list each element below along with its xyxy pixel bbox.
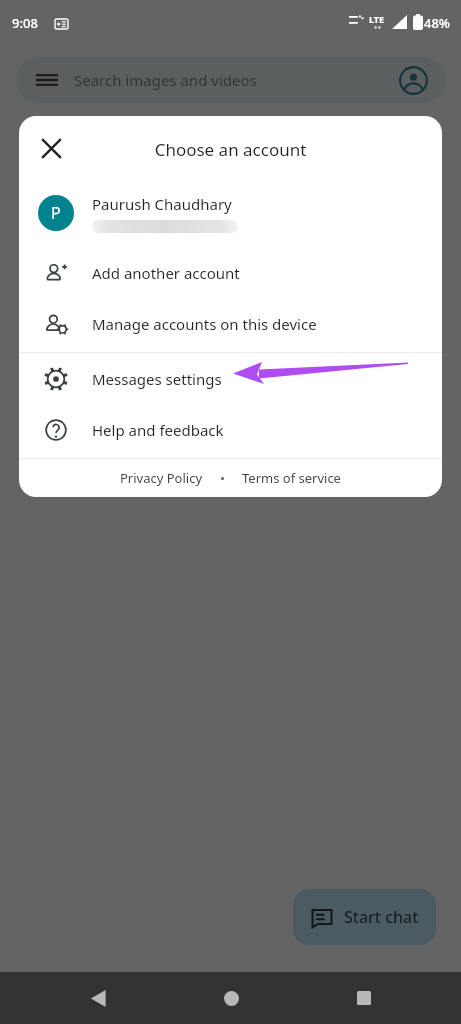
button[interactable]: Manage accounts on this device (19, 298, 442, 349)
staticText: Manage accounts on this device (92, 314, 317, 334)
staticText: Paurush Chaudhary (92, 194, 232, 214)
staticText: Privacy Policy (120, 469, 203, 487)
staticText: Start chat (344, 906, 419, 928)
staticText: Messages settings (92, 369, 222, 389)
button[interactable]: Back (76, 976, 120, 1020)
button[interactable]: Close (35, 132, 67, 164)
staticText: P (51, 202, 61, 224)
staticText: LTE (369, 13, 385, 25)
staticText: 48% (424, 14, 450, 32)
button[interactable]: Terms of service (238, 463, 345, 493)
staticText: Search images and videos (74, 70, 257, 90)
button[interactable]: Start chat (293, 889, 436, 945)
button[interactable]: Privacy Policy (116, 463, 207, 493)
staticText: Help and feedback (92, 420, 224, 440)
staticText: Terms of service (242, 469, 341, 487)
button[interactable]: Messages settings (19, 353, 442, 404)
button[interactable]: P (19, 179, 442, 247)
other: Account (399, 66, 428, 95)
staticText: Add another account (92, 263, 240, 283)
other: Open navigation menu (36, 69, 58, 91)
staticText: 9:08 (12, 14, 38, 32)
button[interactable]: Help and feedback (19, 404, 442, 455)
button[interactable]: Home (209, 976, 253, 1020)
staticText: Choose an account (19, 138, 442, 161)
button[interactable]: Add another account (19, 247, 442, 298)
button[interactable]: Open navigation menu (16, 57, 445, 103)
button[interactable]: Recent apps (342, 976, 386, 1020)
